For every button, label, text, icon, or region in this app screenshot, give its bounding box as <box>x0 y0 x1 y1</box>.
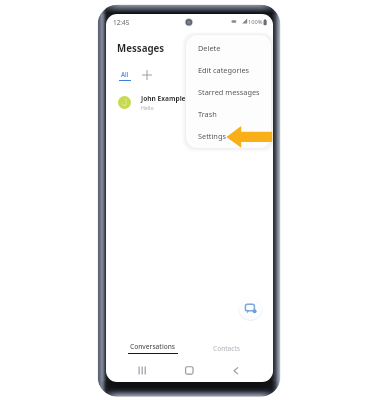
staticText: Settings <box>198 131 226 141</box>
staticText: Starred messages <box>198 87 260 97</box>
button[interactable]: Settings <box>186 125 271 147</box>
staticText: Delete <box>198 43 221 53</box>
button[interactable]: Starred messages <box>186 81 271 103</box>
button[interactable]: Conversations <box>116 339 190 357</box>
button[interactable]: Edit categories <box>186 59 271 81</box>
staticText: Trash <box>198 109 217 119</box>
button[interactable]: Contacts <box>196 339 258 357</box>
staticText: John Example <box>141 94 186 103</box>
staticText: All <box>121 70 129 78</box>
button[interactable]: John Example <box>106 90 273 114</box>
button[interactable]: All <box>119 70 131 81</box>
staticText: Messages <box>117 42 165 55</box>
staticText: Edit categories <box>198 65 250 75</box>
button[interactable]: Delete <box>186 37 271 59</box>
staticText: 12:45 <box>113 18 130 27</box>
staticText: 100% <box>248 18 263 26</box>
staticText: Conversations <box>130 342 176 351</box>
button[interactable]: Trash <box>186 103 271 125</box>
button[interactable]: Add category <box>139 67 155 83</box>
staticText: Contacts <box>213 344 241 353</box>
button[interactable]: New conversation <box>238 296 263 321</box>
staticText: Hello <box>141 104 154 111</box>
